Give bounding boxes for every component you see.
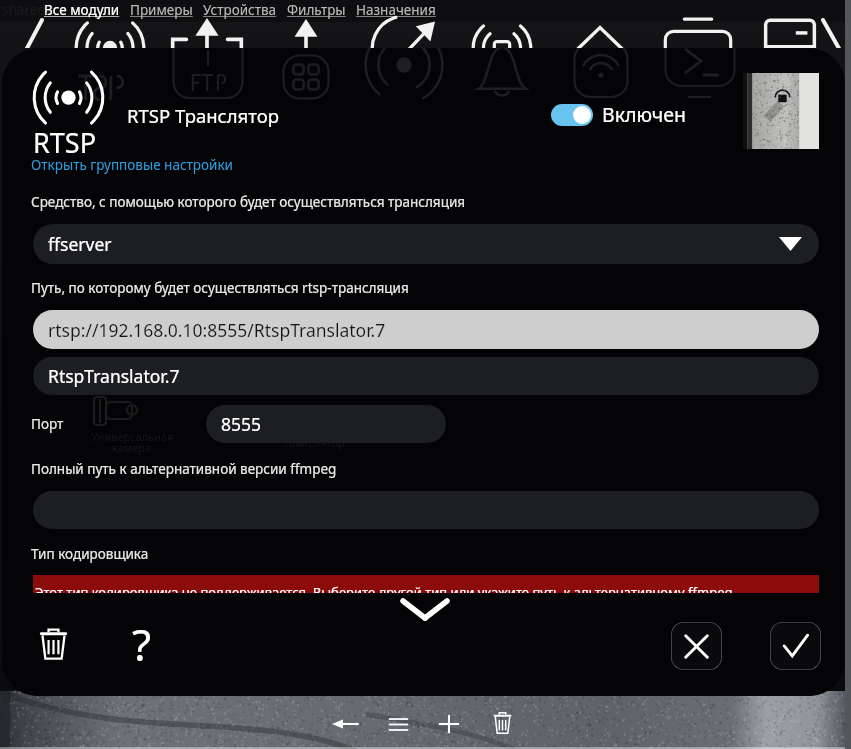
staticText: ? [132, 614, 152, 664]
button[interactable]: Delete [479, 700, 525, 746]
staticText: shared. [2, 1, 50, 19]
staticText: Этот тип кодировщика не поддерживается. … [35, 583, 733, 593]
staticText: RtspTranslator.7 [48, 364, 180, 388]
button[interactable]: Cancel [671, 622, 722, 670]
staticText: Фильтры [287, 1, 346, 19]
button[interactable]: Включен [551, 101, 687, 128]
staticText: Все модули [44, 1, 120, 19]
staticText: Полный путь к альтернативной версии ffmp… [31, 460, 337, 478]
staticText: 8555 [221, 412, 262, 436]
staticText: Транслятор [283, 435, 345, 450]
staticText: камера [112, 440, 152, 455]
button[interactable]: RtspTranslator.7 [33, 357, 819, 395]
button[interactable]: ffserver [33, 224, 819, 264]
staticText: Назначения [356, 1, 436, 19]
staticText: RTSP Транслятор [127, 103, 279, 128]
button[interactable]: 8555 [206, 405, 446, 443]
button[interactable]: Confirm [770, 622, 821, 670]
staticText: Средство, с помощью которого будет осуще… [31, 193, 466, 211]
button[interactable]: Открыть групповые настройки [31, 156, 233, 174]
button[interactable]: Help [117, 614, 167, 664]
staticText: RTSP [288, 404, 337, 433]
button[interactable]: Назначения [356, 1, 436, 19]
button[interactable]: Примеры [130, 1, 193, 19]
staticText: ffserver [48, 232, 112, 256]
button[interactable]: Back [322, 701, 368, 747]
staticText: Включен [602, 101, 687, 128]
staticText: rtsp://192.168.0.10:8555/RtspTranslator.… [48, 318, 386, 342]
button[interactable]: Все модули [44, 1, 120, 19]
staticText: Порт [31, 415, 64, 433]
staticText: Путь, по которому будет осуществляться r… [31, 279, 409, 297]
button[interactable]: rtsp://192.168.0.10:8555/RtspTranslator.… [33, 310, 819, 349]
button[interactable]: Устройства [203, 1, 277, 19]
staticText: Универсальная [91, 429, 174, 444]
button[interactable]: Фильтры [287, 1, 346, 19]
staticText: Примеры [130, 1, 193, 19]
staticText: Устройства [203, 1, 277, 19]
button[interactable]: Add [426, 701, 472, 747]
button[interactable]: Camera preview [743, 73, 819, 149]
staticText: RTSP [33, 124, 96, 161]
button[interactable]: Delete [28, 619, 78, 669]
button[interactable]: Recents [375, 701, 421, 747]
staticText: Тип кодировщика [31, 545, 149, 563]
